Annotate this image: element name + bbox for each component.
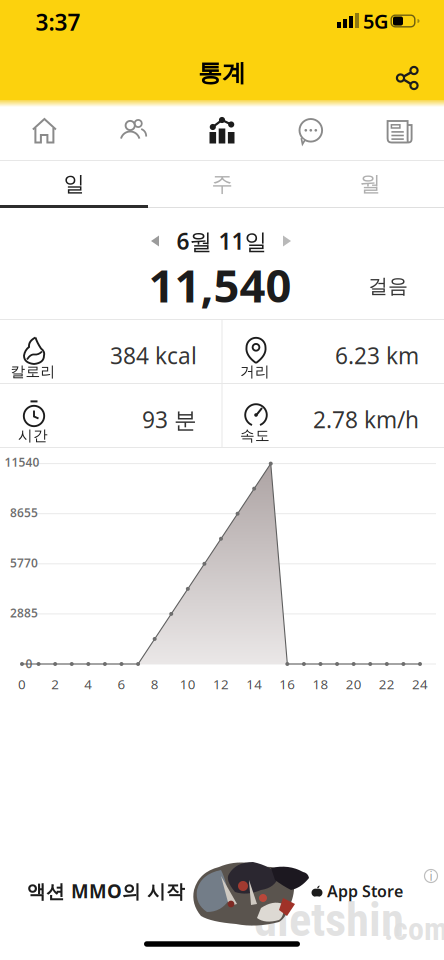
- staticText: 20: [346, 675, 362, 693]
- staticText: 22: [379, 675, 395, 693]
- staticText: 0: [18, 675, 26, 693]
- staticText: 18: [312, 675, 328, 693]
- staticText: 거리: [240, 362, 270, 380]
- staticText: 11,540: [148, 255, 291, 315]
- staticText: 6월 11일: [176, 226, 267, 256]
- staticText: 통계: [198, 58, 246, 88]
- button[interactable]: 주: [148, 162, 296, 206]
- button[interactable]: Home: [0, 102, 89, 160]
- staticText: 일: [63, 171, 84, 197]
- staticText: 6: [117, 675, 125, 693]
- staticText: i: [429, 868, 432, 884]
- staticText: 칼로리: [10, 362, 55, 380]
- button[interactable]: News: [355, 102, 444, 160]
- button[interactable]: Previous day: [148, 234, 161, 247]
- staticText: 주: [211, 171, 232, 197]
- staticText: 2.78 km/h: [313, 404, 419, 434]
- staticText: 2885: [10, 605, 38, 621]
- staticText: dietshin: [254, 893, 404, 947]
- staticText: 93 분: [142, 404, 197, 434]
- staticText: 월: [359, 171, 380, 197]
- staticText: 5G: [363, 8, 389, 34]
- staticText: 4: [84, 675, 92, 693]
- staticText: 12: [213, 675, 229, 693]
- staticText: 0: [25, 655, 32, 671]
- staticText: 속도: [240, 426, 270, 444]
- staticText: 8: [151, 675, 159, 693]
- button[interactable]: Chat: [266, 102, 355, 160]
- button[interactable]: Share: [0, 44, 444, 100]
- button[interactable]: 월: [296, 162, 444, 206]
- button[interactable]: Statistics: [178, 102, 266, 160]
- staticText: 16: [279, 675, 295, 693]
- staticText: 14: [246, 675, 262, 693]
- staticText: 6.23 km: [335, 340, 419, 370]
- staticText: 액션 MMO의 시작: [27, 879, 185, 903]
- staticText: 5770: [10, 555, 38, 571]
- button[interactable]: Next day: [280, 234, 293, 247]
- staticText: 8655: [10, 505, 38, 521]
- button[interactable]: 일: [0, 162, 148, 206]
- staticText: .com: [384, 910, 444, 948]
- staticText: 11540: [4, 454, 39, 470]
- button[interactable]: Friends: [89, 102, 178, 160]
- staticText: App Store: [327, 880, 403, 902]
- button[interactable]: dietshin: [0, 855, 444, 935]
- staticText: 24: [412, 675, 428, 693]
- staticText: 시간: [18, 426, 48, 444]
- staticText: 10: [180, 675, 196, 693]
- staticText: 384 kcal: [110, 340, 197, 370]
- staticText: 2: [51, 675, 59, 693]
- staticText: 걸음: [368, 274, 408, 298]
- staticText: 3:37: [35, 7, 80, 37]
